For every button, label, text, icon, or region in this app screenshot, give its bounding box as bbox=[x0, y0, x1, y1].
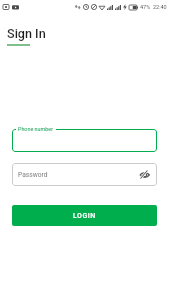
staticText: Sign In bbox=[7, 26, 46, 41]
button[interactable] bbox=[12, 129, 157, 152]
staticText: 47% bbox=[140, 4, 151, 10]
staticText: 22:40 bbox=[153, 4, 167, 10]
staticText: Password bbox=[18, 171, 48, 179]
staticText: LOGIN bbox=[73, 212, 96, 220]
button[interactable]: Password bbox=[12, 163, 157, 186]
staticText: Phone number bbox=[18, 126, 54, 132]
button[interactable]: Show password bbox=[131, 163, 157, 186]
button[interactable]: LOGIN bbox=[12, 205, 157, 226]
